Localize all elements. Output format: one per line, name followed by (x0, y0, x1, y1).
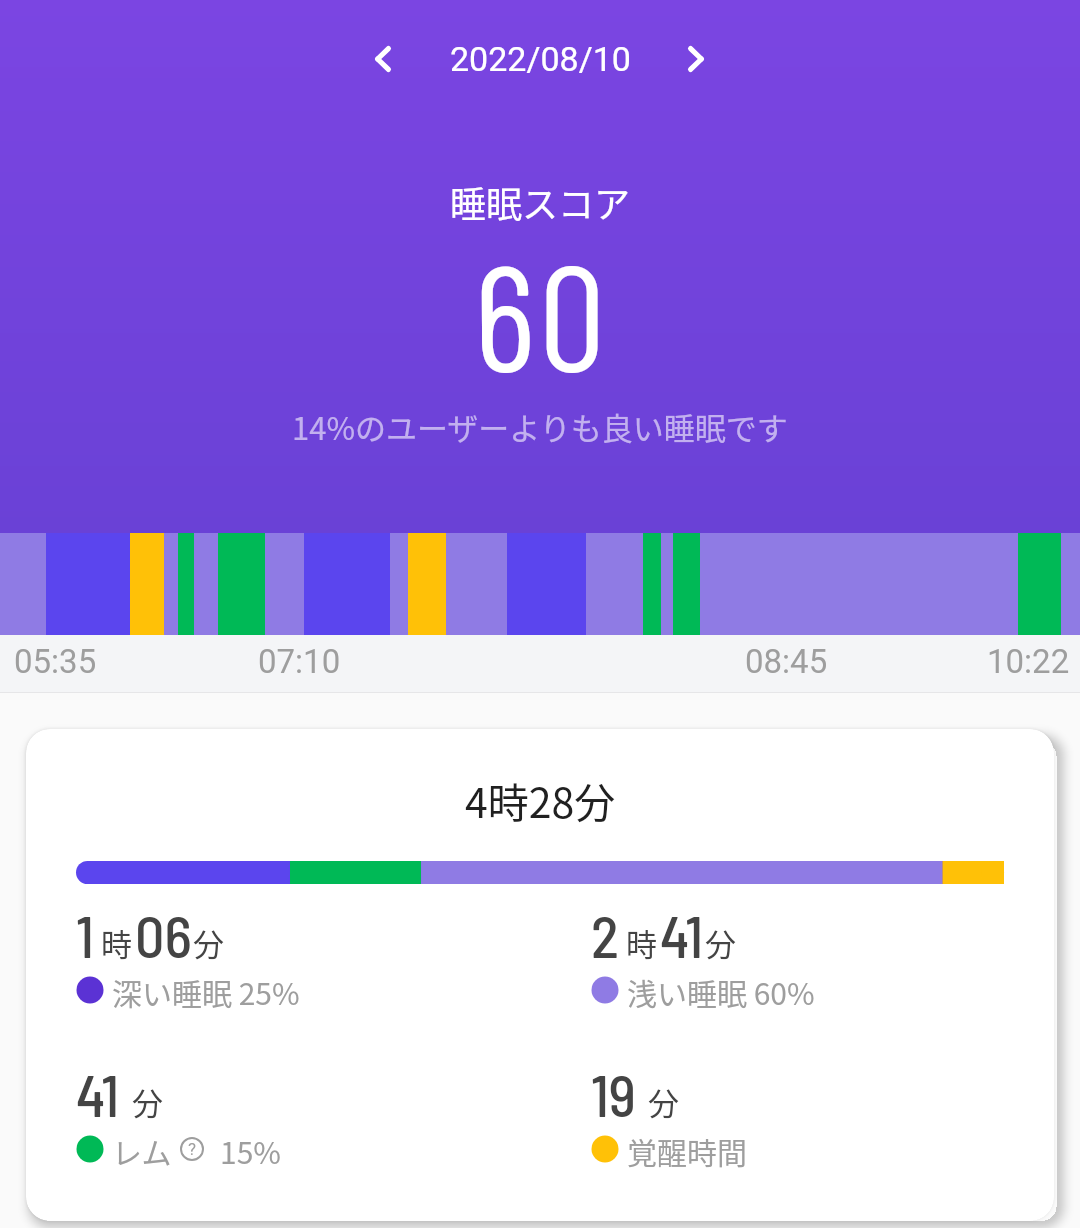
staticText: 浅い睡眠 60% (627, 970, 815, 1010)
staticText: 分 (193, 920, 224, 965)
staticText: 41 (660, 900, 704, 970)
staticText: 19 (591, 1059, 636, 1129)
button[interactable]: Next day (660, 23, 732, 95)
staticText: 08:45 (745, 642, 828, 681)
staticText: 2022/08/10 (450, 39, 631, 79)
staticText: ? (188, 1139, 197, 1159)
button[interactable]: 4時28分 (26, 729, 1054, 1221)
staticText: 分 (132, 1079, 163, 1124)
staticText: 15% (220, 1129, 281, 1169)
staticText: レム (112, 1129, 172, 1169)
staticText: 時 (101, 920, 132, 965)
staticText: 睡眠スコア (450, 176, 631, 228)
staticText: 分 (705, 920, 736, 965)
staticText: 41 (76, 1059, 120, 1129)
staticText: 分 (648, 1079, 679, 1124)
staticText: 07:10 (258, 642, 341, 681)
staticText: 14%のユーザーよりも良い睡眠です (292, 404, 788, 449)
staticText: 05:35 (14, 642, 97, 681)
staticText: 深い睡眠 25% (112, 970, 300, 1010)
button[interactable]: About REM sleep (180, 1137, 204, 1161)
staticText: 覚醒時間 (627, 1129, 747, 1169)
button[interactable]: Previous day (347, 23, 419, 95)
staticText: 1 (76, 900, 94, 970)
staticText: 時 (626, 920, 657, 965)
staticText: 2 (591, 900, 619, 970)
staticText: 60 (474, 223, 610, 402)
staticText: 06 (135, 900, 192, 970)
staticText: 4時28分 (465, 770, 616, 829)
staticText: 10:22 (987, 642, 1070, 681)
